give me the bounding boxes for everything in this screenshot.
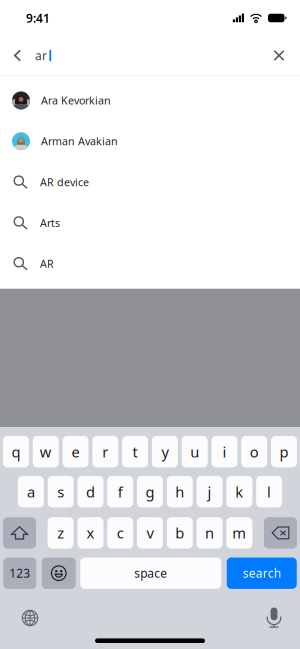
staticText: r	[102, 442, 108, 461]
staticText: o	[250, 442, 259, 461]
button[interactable]: v	[137, 517, 163, 549]
button[interactable]: f	[107, 476, 133, 507]
button[interactable]: j	[197, 476, 223, 507]
staticText: f	[118, 482, 123, 501]
button[interactable]: Arts	[0, 202, 300, 243]
staticText: ar	[35, 47, 47, 63]
button[interactable]: Ara Kevorkian	[0, 80, 300, 121]
staticText: t	[133, 442, 138, 461]
button[interactable]: d	[77, 476, 103, 507]
button[interactable]: o	[241, 436, 267, 467]
button[interactable]: x	[77, 517, 103, 549]
staticText: g	[145, 482, 154, 501]
button[interactable]: q	[3, 436, 29, 467]
button[interactable]: Shift	[3, 517, 36, 549]
button[interactable]: l	[256, 476, 282, 507]
button[interactable]: r	[92, 436, 118, 467]
button[interactable]: i	[211, 436, 237, 467]
staticText: x	[86, 523, 94, 543]
staticText: search	[243, 565, 281, 581]
staticText: i	[222, 442, 226, 461]
staticText: n	[205, 523, 214, 543]
staticText: 9:41	[26, 10, 50, 26]
button[interactable]: Delete	[264, 517, 297, 549]
button[interactable]: k	[226, 476, 252, 507]
staticText: space	[134, 565, 167, 581]
button[interactable]: g	[137, 476, 163, 507]
button[interactable]: n	[197, 517, 223, 549]
staticText: Arman Avakian	[41, 134, 118, 148]
button[interactable]: space	[80, 557, 221, 589]
button[interactable]: m	[226, 517, 252, 549]
button[interactable]: y	[152, 436, 178, 467]
button[interactable]: AR device	[0, 162, 300, 202]
staticText: l	[267, 482, 271, 501]
staticText: q	[11, 442, 20, 461]
button[interactable]: e	[63, 436, 89, 467]
button[interactable]: h	[167, 476, 193, 507]
button[interactable]: Clear	[264, 38, 294, 72]
button[interactable]: Switch keyboard	[9, 605, 51, 631]
button[interactable]: b	[167, 517, 193, 549]
button[interactable]: Back	[4, 38, 31, 72]
staticText: k	[235, 482, 243, 501]
button[interactable]: c	[107, 517, 133, 549]
staticText: w	[40, 442, 52, 461]
staticText: p	[279, 442, 288, 461]
staticText: AR device	[40, 175, 89, 189]
staticText: y	[161, 442, 168, 461]
button[interactable]: 123	[3, 557, 36, 589]
staticText: j	[208, 482, 212, 501]
button[interactable]: t	[122, 436, 148, 467]
button[interactable]: w	[33, 436, 59, 467]
staticText: e	[72, 442, 80, 461]
button[interactable]: search	[227, 557, 297, 589]
staticText: AR	[40, 256, 54, 271]
staticText: Arts	[40, 216, 60, 230]
button[interactable]: Dictate	[253, 605, 295, 631]
staticText: Ara Kevorkian	[41, 93, 111, 107]
staticText: c	[117, 523, 124, 543]
button[interactable]: u	[182, 436, 208, 467]
staticText: z	[57, 523, 64, 543]
button[interactable]: AR	[0, 243, 300, 284]
staticText: s	[57, 482, 64, 501]
staticText: 123	[9, 565, 30, 581]
staticText: v	[146, 523, 153, 543]
staticText: a	[27, 482, 35, 501]
staticText: u	[190, 442, 199, 461]
button[interactable]: p	[271, 436, 297, 467]
button[interactable]: Emoji	[42, 557, 76, 589]
button[interactable]: s	[48, 476, 74, 507]
staticText: d	[86, 482, 95, 501]
button[interactable]: Arman Avakian	[0, 121, 300, 162]
staticText: m	[232, 523, 246, 543]
button[interactable]: a	[18, 476, 44, 507]
staticText: b	[175, 523, 184, 543]
button[interactable]: z	[48, 517, 74, 549]
staticText: h	[175, 482, 184, 501]
